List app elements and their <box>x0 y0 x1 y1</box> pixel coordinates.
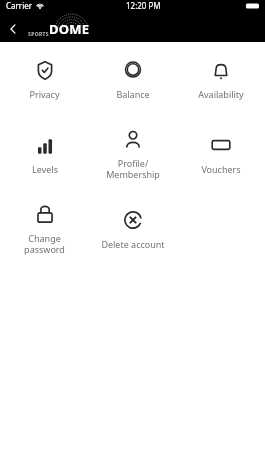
staticText: Profile/ Membership <box>106 157 160 181</box>
staticText: Change password <box>24 232 65 256</box>
staticText: DOME <box>49 20 90 38</box>
button[interactable]: Back <box>0 16 26 42</box>
staticText: SPORTS <box>28 31 49 38</box>
staticText: Levels <box>32 163 58 175</box>
staticText: Delete account <box>101 238 165 250</box>
staticText: Availability <box>198 88 244 100</box>
button[interactable]: Delete account <box>89 192 177 267</box>
button[interactable]: Privacy <box>0 42 89 117</box>
staticText: Balance <box>116 88 150 100</box>
button[interactable]: Levels <box>0 117 89 192</box>
staticText: 12:20 PM <box>126 0 161 11</box>
staticText: Privacy <box>29 88 60 100</box>
staticText: Vouchers <box>201 163 241 175</box>
button[interactable]: Profile/ Membership <box>89 117 177 192</box>
staticText: Carrier <box>6 0 33 11</box>
button[interactable]: Change password <box>0 192 89 267</box>
button[interactable]: Availability <box>177 42 265 117</box>
button[interactable]: Vouchers <box>177 117 265 192</box>
button[interactable]: Balance <box>89 42 177 117</box>
